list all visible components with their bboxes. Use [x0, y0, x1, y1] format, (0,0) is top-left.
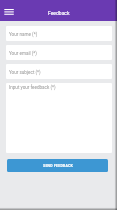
button[interactable]: Your name (*)	[6, 26, 112, 41]
button[interactable]: SEND FEEDBACK	[7, 159, 108, 172]
button[interactable]: Your email (*)	[6, 45, 112, 60]
button[interactable]: Open navigation menu	[0, 0, 19, 21]
staticText: Input your feedback (*)	[9, 85, 56, 90]
staticText: SEND FEEDBACK	[43, 164, 73, 168]
staticText: Feedback	[48, 10, 70, 16]
button[interactable]: Input your feedback (*)	[6, 83, 112, 153]
staticText: Your subject (*)	[9, 70, 41, 75]
staticText: Your email (*)	[9, 51, 37, 56]
button[interactable]: Your subject (*)	[6, 64, 112, 79]
staticText: Your name (*)	[9, 32, 38, 37]
